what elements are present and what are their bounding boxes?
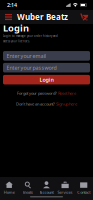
button[interactable]: Account (37, 181, 56, 195)
staticText: Home (4, 190, 15, 195)
button[interactable]: Menu (2, 10, 15, 23)
staticText: Login to manage your order history and (3, 34, 58, 38)
button[interactable]: Enter your email (3, 51, 90, 61)
staticText: Don't have an account? (16, 101, 56, 107)
button[interactable]: Services (56, 181, 74, 195)
staticText: Forgot your password? (17, 90, 58, 96)
button[interactable]: Home (0, 181, 19, 195)
staticText: Login (3, 22, 29, 34)
button[interactable]: Enter your password (3, 63, 90, 72)
button[interactable]: Cart (78, 10, 91, 23)
staticText: Sign up here (56, 101, 77, 107)
staticText: Login (39, 76, 53, 83)
staticText: Enter your email (6, 52, 45, 59)
button[interactable]: Login (3, 75, 90, 84)
staticText: Reset here (58, 90, 76, 96)
button[interactable]: Forgot your password? (3, 90, 90, 96)
button[interactable]: Contact (74, 181, 93, 195)
staticText: Wuber Beatz (17, 12, 68, 22)
staticText: Enter your password (6, 64, 56, 71)
staticText: access your licenses. (3, 39, 30, 43)
button[interactable]: Don't have an account? (3, 101, 90, 107)
staticText: Contact (77, 190, 90, 195)
staticText: Beats (23, 190, 33, 195)
button[interactable]: Beats (19, 181, 37, 195)
staticText: 2:14 (7, 1, 17, 9)
staticText: Services (58, 190, 73, 195)
staticText: Account (39, 190, 53, 195)
